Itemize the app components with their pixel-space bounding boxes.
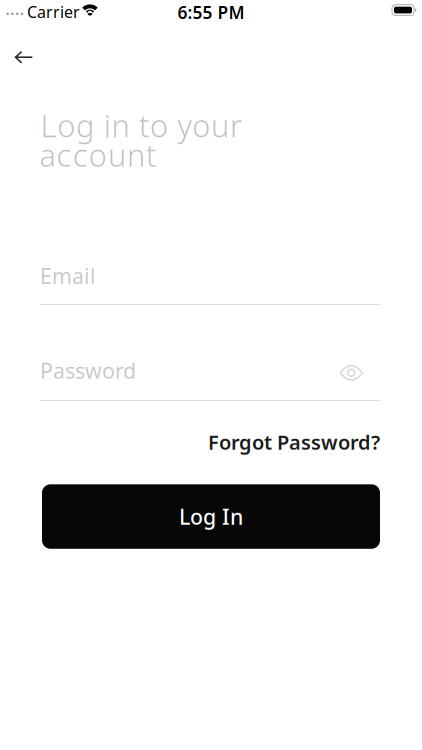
staticText: o bbox=[89, 134, 107, 175]
staticText: o bbox=[150, 105, 168, 146]
button[interactable]: Log In bbox=[42, 484, 380, 549]
staticText: i bbox=[104, 105, 111, 146]
staticText: Forgot Password? bbox=[208, 429, 380, 455]
staticText: Carrier bbox=[27, 1, 80, 22]
staticText: n bbox=[127, 134, 145, 175]
button[interactable]: Forgot Password? bbox=[208, 429, 380, 455]
staticText: 6:55 PM bbox=[177, 1, 244, 24]
staticText: t bbox=[139, 105, 149, 146]
staticText: Password bbox=[40, 356, 136, 385]
button[interactable] bbox=[7, 44, 40, 71]
staticText: Log In bbox=[179, 502, 243, 531]
staticText: o bbox=[192, 105, 210, 146]
staticText: y bbox=[177, 105, 191, 146]
staticText: a bbox=[39, 134, 55, 175]
staticText: r bbox=[230, 105, 242, 146]
staticText: u bbox=[108, 134, 126, 175]
staticText: o bbox=[57, 105, 75, 146]
staticText: t bbox=[146, 134, 156, 175]
button[interactable] bbox=[333, 360, 369, 385]
staticText: n bbox=[111, 105, 129, 146]
staticText: L bbox=[40, 105, 56, 146]
staticText: u bbox=[211, 105, 229, 146]
staticText: Email bbox=[40, 262, 96, 290]
button[interactable]: Email bbox=[40, 262, 380, 305]
staticText: c bbox=[57, 134, 72, 175]
staticText: g bbox=[76, 105, 94, 146]
button[interactable]: Password bbox=[40, 356, 380, 401]
staticText: c bbox=[73, 134, 88, 175]
